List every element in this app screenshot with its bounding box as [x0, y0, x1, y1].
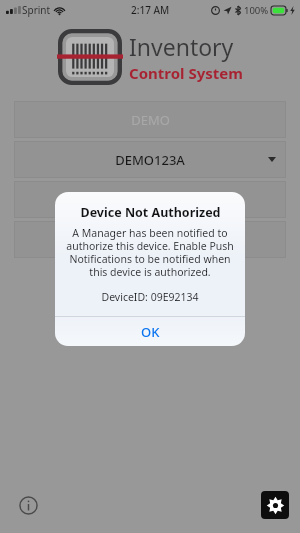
button[interactable]: OK	[55, 317, 245, 346]
staticText: Device Not Authorized	[80, 204, 221, 221]
staticText: OK	[141, 323, 160, 341]
button[interactable]: Information	[16, 493, 40, 517]
button[interactable]: DEMO123A	[14, 141, 286, 178]
button[interactable]: Settings	[261, 491, 289, 519]
staticText: DEMO123A	[115, 151, 185, 169]
button[interactable]	[14, 221, 286, 258]
staticText: A Manager has been notified to authorize…	[65, 226, 235, 279]
staticText: 100%	[244, 4, 269, 17]
staticText: Inventory	[129, 31, 234, 62]
staticText: DEMO	[131, 111, 170, 129]
staticText: 2:17 AM	[131, 3, 170, 17]
button[interactable]	[14, 181, 286, 218]
staticText: DeviceID: 09E92134	[101, 290, 199, 304]
staticText: Sprint	[22, 3, 51, 17]
staticText: Control System	[129, 63, 243, 83]
